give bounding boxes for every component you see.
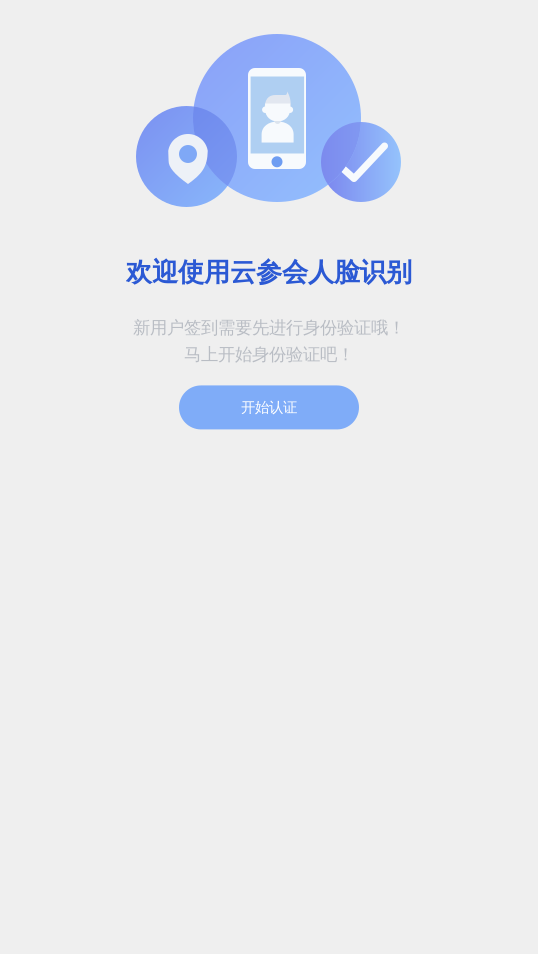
staticText: 新用户签到需要先进行身份验证哦！ bbox=[133, 317, 405, 339]
staticText: 欢迎使用云参会人脸识别 bbox=[126, 256, 412, 289]
staticText: 马上开始身份验证吧！ bbox=[184, 344, 354, 365]
button[interactable]: 开始认证 bbox=[179, 385, 359, 429]
staticText: 开始认证 bbox=[241, 398, 297, 416]
